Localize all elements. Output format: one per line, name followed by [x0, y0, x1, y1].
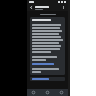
button[interactable] [30, 17, 65, 75]
button[interactable]: Reply all [40, 89, 54, 96]
button[interactable]: More options [61, 5, 66, 10]
button[interactable] [30, 77, 65, 81]
button[interactable]: Back [29, 5, 34, 10]
button[interactable]: Forward [54, 89, 68, 96]
button[interactable]: Reply [27, 89, 40, 96]
